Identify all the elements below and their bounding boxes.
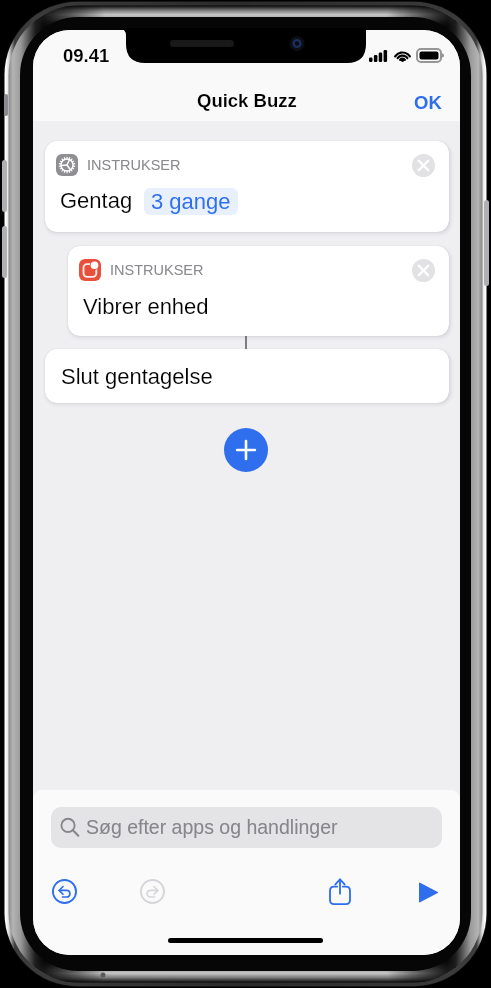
button[interactable]: Slut gentagelse: [45, 349, 449, 403]
button[interactable]: Redo: [135, 874, 169, 908]
button[interactable]: 3 gange: [144, 188, 238, 215]
staticText: Slut gentagelse: [61, 364, 213, 389]
button[interactable]: Undo: [47, 874, 81, 908]
button[interactable]: INSTRUKSER: [45, 141, 449, 232]
staticText: Quick Buzz: [197, 90, 297, 111]
button[interactable]: Add action: [224, 428, 268, 472]
button[interactable]: Run shortcut: [412, 875, 446, 909]
staticText: 09.41: [63, 45, 110, 66]
staticText: Søg efter apps og handlinger: [86, 816, 338, 838]
button[interactable]: Søg efter apps og handlinger: [51, 807, 442, 848]
staticText: Gentag: [60, 188, 133, 213]
button[interactable]: Share: [323, 874, 357, 908]
button[interactable]: Remove action: [412, 259, 435, 282]
staticText: 3 gange: [151, 189, 231, 214]
button[interactable]: INSTRUKSER: [68, 246, 449, 336]
staticText: INSTRUKSER: [110, 262, 204, 278]
staticText: OK: [414, 92, 442, 113]
staticText: INSTRUKSER: [87, 157, 181, 173]
staticText: Vibrer enhed: [83, 294, 209, 319]
button[interactable]: OK: [396, 84, 460, 121]
button[interactable]: Remove action: [412, 154, 435, 177]
